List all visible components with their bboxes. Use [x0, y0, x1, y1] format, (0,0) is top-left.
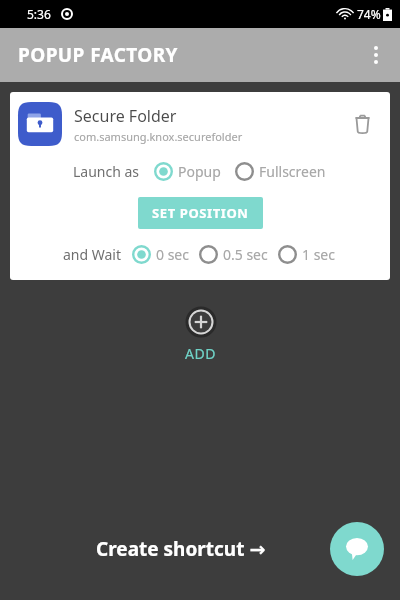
button[interactable]: SET POSITION [138, 197, 263, 229]
staticText: POPUP FACTORY [18, 42, 178, 68]
button[interactable]: Delete [342, 104, 382, 144]
button[interactable]: 0 sec [130, 243, 191, 266]
staticText: 74% [357, 6, 381, 22]
button[interactable]: Secure Folder [10, 92, 390, 280]
staticText: com.samsung.knox.securefolder [74, 129, 243, 144]
staticText: 1 sec [302, 245, 335, 264]
staticText: Secure Folder [74, 105, 177, 127]
staticText: 0.5 sec [223, 245, 268, 264]
button[interactable]: Create shortcut → [96, 536, 266, 562]
staticText: SET POSITION [152, 204, 249, 222]
button[interactable]: Fullscreen [233, 160, 328, 183]
staticText: Popup [178, 162, 221, 181]
staticText: Fullscreen [259, 162, 326, 181]
button[interactable]: Feedback [330, 522, 384, 576]
staticText: 5:36 [27, 6, 51, 22]
staticText: Launch as [73, 162, 140, 181]
button[interactable]: Popup [152, 160, 223, 183]
button[interactable]: ADD [179, 302, 222, 369]
staticText: ADD [185, 344, 216, 363]
button[interactable]: More options [352, 31, 400, 79]
button[interactable]: 1 sec [276, 243, 337, 266]
button[interactable]: 0.5 sec [197, 243, 270, 266]
staticText: 0 sec [156, 245, 189, 264]
staticText: and Wait [63, 245, 122, 264]
